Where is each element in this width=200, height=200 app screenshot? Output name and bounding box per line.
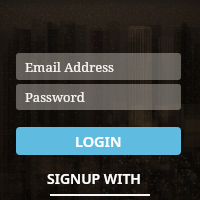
- button[interactable]: SIGNUP WITH: [0, 169, 200, 188]
- staticText: Email Address: [25, 58, 114, 76]
- staticText: LOGIN: [75, 131, 122, 151]
- button[interactable]: Email Address: [16, 53, 181, 80]
- button[interactable]: LOGIN: [16, 127, 181, 155]
- button[interactable]: Password: [16, 84, 181, 110]
- staticText: Password: [25, 88, 85, 106]
- staticText: SIGNUP WITH: [47, 169, 141, 188]
